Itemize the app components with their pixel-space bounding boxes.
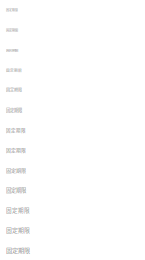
staticText: 固定期限 [6, 47, 18, 52]
staticText: 固定期限 [6, 166, 26, 174]
staticText: 固定期限 [6, 186, 26, 194]
staticText: 固定期限 [6, 127, 26, 133]
staticText: 固定期限 [6, 67, 22, 73]
staticText: 固定期限 [6, 146, 26, 153]
staticText: 固定期限 [6, 87, 22, 93]
staticText: 固定期限 [6, 8, 18, 12]
staticText: 固定期限 [6, 246, 30, 254]
staticText: 固定期限 [6, 226, 30, 234]
staticText: 固定期限 [6, 107, 22, 113]
staticText: 固定期限 [6, 28, 18, 32]
staticText: 固定期限 [6, 206, 30, 214]
